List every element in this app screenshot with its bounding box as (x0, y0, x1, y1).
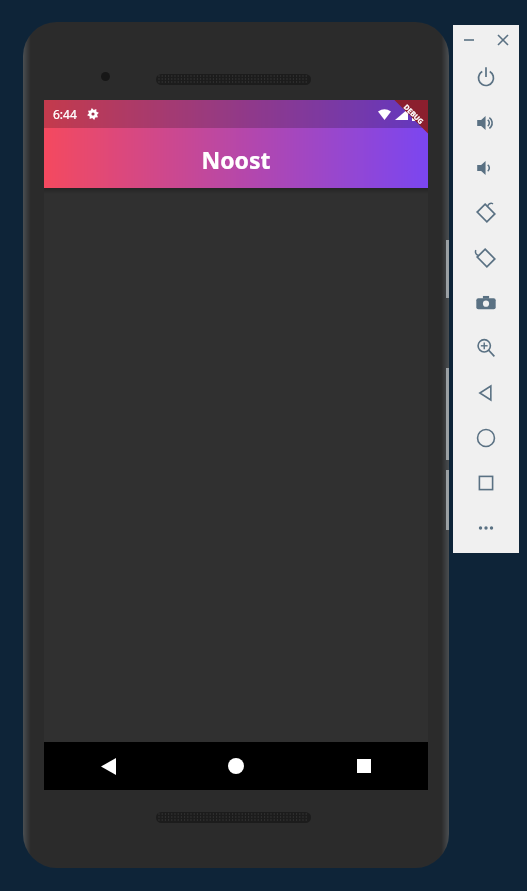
button[interactable]: Recents (300, 742, 428, 790)
button[interactable]: Screenshot (453, 280, 519, 325)
button[interactable]: Volume up (453, 100, 519, 145)
button[interactable]: Volume down (453, 145, 519, 190)
button[interactable]: Overview (453, 460, 519, 505)
button[interactable]: Back (453, 370, 519, 415)
button[interactable]: Back (44, 742, 172, 790)
staticText: 6:44 (53, 106, 77, 122)
button[interactable]: Zoom (453, 325, 519, 370)
button[interactable]: Minimize (459, 30, 479, 50)
button[interactable]: Home (453, 415, 519, 460)
button[interactable]: Home (172, 742, 300, 790)
staticText: DEBUG (401, 103, 426, 127)
button[interactable]: Close (493, 30, 513, 50)
staticText: Noost (44, 144, 428, 175)
button[interactable]: Power (453, 55, 519, 100)
button[interactable]: Rotate right (453, 235, 519, 280)
button[interactable]: More (453, 505, 519, 550)
button[interactable]: Rotate left (453, 190, 519, 235)
